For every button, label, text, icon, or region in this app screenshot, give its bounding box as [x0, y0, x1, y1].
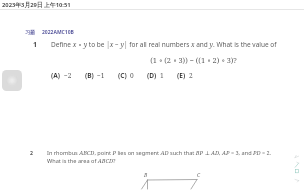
staticText: (C) — [118, 71, 127, 80]
staticText: 1 — [33, 40, 38, 50]
staticText: (E) — [177, 71, 186, 80]
staticText: C — [197, 172, 201, 179]
staticText: 1 — [160, 71, 164, 80]
staticText: 2022AMC10B — [42, 29, 74, 36]
staticText: 2 — [189, 71, 193, 80]
staticText: 习题 — [25, 29, 35, 35]
staticText: 0 — [130, 71, 134, 80]
staticText: −1 — [97, 71, 105, 80]
staticText: (B) — [85, 71, 94, 80]
staticText: Define x ∘ y to be |x − y| for all real … — [51, 40, 277, 49]
staticText: What is the area of ABCD? — [47, 157, 116, 165]
staticText: 2 — [30, 149, 33, 156]
staticText: −2 — [64, 71, 72, 80]
staticText: B — [144, 172, 148, 179]
button[interactable]: Floating tool button — [2, 70, 22, 91]
staticText: (A) — [51, 71, 61, 80]
staticText: (D) — [147, 71, 157, 80]
staticText: (1 ∘ (2 ∘ 3)) − ((1 ∘ 2) ∘ 3)? — [91, 55, 296, 65]
staticText: In rhombus ABCD, point P lies on segment… — [47, 149, 272, 157]
staticText: 2023年3月29日 上午10:51 — [2, 1, 71, 9]
